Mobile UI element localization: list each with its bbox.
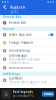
staticText: Security Question xyxy=(9,66,33,69)
staticText: Automatically lock newly installed apps xyxy=(9,58,40,65)
staticText: General xyxy=(2,27,14,31)
staticText: Remove Ads xyxy=(9,21,26,24)
staticText: Change Password xyxy=(9,41,33,44)
staticText: Lock new apps xyxy=(9,54,27,57)
button[interactable]: Back xyxy=(1,4,8,10)
staticText: SETTINGS xyxy=(36,14,48,17)
staticText: Lock Mode xyxy=(9,77,23,80)
staticText: Remove Ads xyxy=(2,15,20,19)
staticText: Choose when apps re-lock xyxy=(9,80,46,84)
staticText: INSTALL xyxy=(44,92,53,96)
button[interactable]: Enable App Lock xyxy=(0,31,56,39)
button[interactable]: Change Password xyxy=(0,39,56,47)
button[interactable]: Lock Mode xyxy=(0,76,56,85)
staticText: Unlock Settings xyxy=(9,49,30,52)
button[interactable]: Lock new apps xyxy=(0,55,56,64)
button[interactable]: Security Question xyxy=(0,64,56,72)
staticText: Enable App Lock xyxy=(9,33,31,36)
staticText: AppLock xyxy=(10,4,25,10)
staticText: G xyxy=(4,90,8,98)
button[interactable]: Remove Ads xyxy=(0,19,56,27)
button[interactable]: APPS xyxy=(0,10,28,15)
staticText: Raid Legends xyxy=(13,90,33,94)
staticText: Lock Settings xyxy=(2,72,19,76)
staticText: Epic fantasy RPG xyxy=(13,94,34,98)
button[interactable]: Unlock Settings xyxy=(0,47,56,55)
staticText: APPS xyxy=(10,11,17,14)
button[interactable]: INSTALL xyxy=(42,91,54,97)
